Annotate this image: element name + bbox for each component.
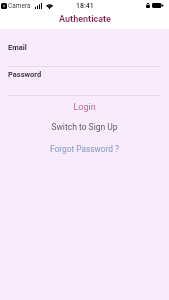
button[interactable]: [8, 38, 161, 67]
staticText: Switch to Sign Up: [51, 122, 118, 132]
button[interactable]: [8, 67, 161, 96]
staticText: Camera: [8, 2, 31, 10]
staticText: Forgot Password ?: [50, 144, 119, 154]
other: Battery: [152, 3, 163, 8]
button[interactable]: Back to Camera: [1, 3, 7, 9]
staticText: 18:41: [76, 2, 94, 10]
staticText: Login: [73, 102, 96, 113]
staticText: Authenticate: [59, 14, 111, 25]
button[interactable]: Switch to Sign Up: [0, 120, 169, 134]
staticText: Password: [8, 70, 42, 79]
other: Wi-Fi: [46, 3, 53, 9]
other: Lock: [146, 3, 150, 8]
other: Cellular signal: [35, 3, 42, 9]
button[interactable]: Login: [0, 100, 169, 114]
staticText: Email: [8, 43, 27, 52]
button[interactable]: Forgot Password ?: [0, 142, 169, 156]
